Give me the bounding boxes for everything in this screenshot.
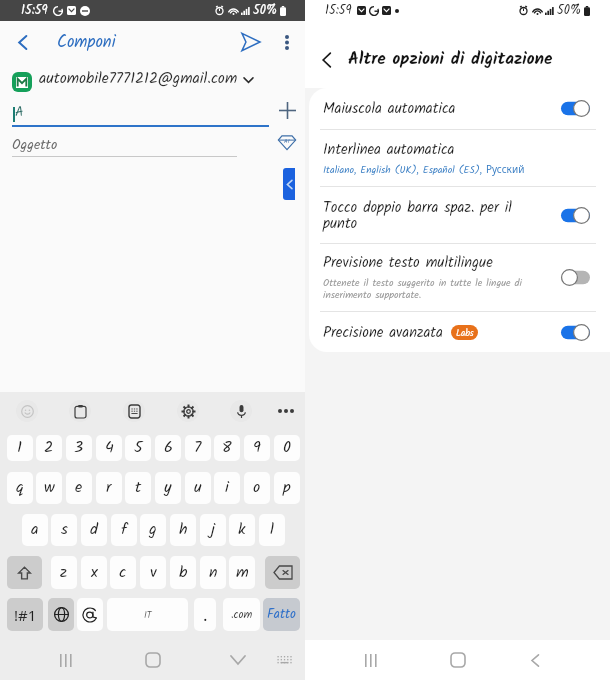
button[interactable]: Add recipient [274, 97, 300, 123]
button[interactable]: Key [194, 598, 216, 631]
staticText: 8 [222, 435, 232, 461]
button[interactable]: x [81, 556, 107, 589]
staticText: Labs [456, 326, 474, 340]
button[interactable]: t [125, 472, 151, 504]
button[interactable]: More [275, 400, 297, 422]
button[interactable]: v [140, 556, 166, 589]
staticText: t [135, 475, 142, 501]
button[interactable]: Emoji [16, 400, 38, 422]
button[interactable]: Toggle [561, 269, 590, 286]
button[interactable]: 4 [96, 435, 122, 461]
button[interactable]: Voice input [230, 400, 252, 422]
button[interactable]: a [22, 514, 48, 546]
button[interactable]: j [200, 514, 226, 546]
button[interactable]: Shift [7, 556, 42, 589]
button[interactable]: Back [305, 35, 348, 85]
button[interactable]: y [155, 472, 181, 504]
button[interactable]: 1 [7, 435, 33, 461]
staticText: 2 [44, 435, 54, 461]
staticText: z [60, 560, 68, 586]
button[interactable]: Key [7, 598, 43, 631]
button[interactable]: l [259, 514, 285, 546]
staticText: 0 [283, 435, 292, 461]
button[interactable]: Tocco doppio barra spaz. per il punto [309, 187, 610, 243]
staticText: Fatto [267, 604, 296, 625]
button[interactable]: Hide keyboard [218, 640, 258, 680]
button[interactable]: Recents [351, 640, 391, 680]
button[interactable]: Toggle [561, 100, 590, 117]
button[interactable]: Stickers [123, 400, 145, 422]
staticText: 9 [253, 435, 261, 461]
button[interactable]: w [36, 472, 62, 504]
staticText: i [225, 475, 229, 501]
button[interactable]: Send [229, 21, 271, 63]
button[interactable]: Back [515, 640, 555, 680]
button[interactable]: Key [107, 598, 188, 631]
button[interactable]: Key [77, 598, 103, 631]
button[interactable]: c [110, 556, 136, 589]
button[interactable]: Open panel [283, 168, 295, 200]
button[interactable]: d [81, 514, 107, 546]
staticText: Altre opzioni di digitazione [348, 46, 553, 73]
staticText: 6 [164, 435, 173, 461]
button[interactable]: More options [271, 21, 303, 63]
button[interactable]: m [229, 556, 255, 589]
button[interactable]: Maiuscola automatica [309, 88, 610, 129]
button[interactable]: Key [263, 598, 300, 631]
staticText: Oggetto [12, 134, 58, 156]
button[interactable]: r [96, 472, 122, 504]
button[interactable]: u [185, 472, 211, 504]
staticText: c [119, 560, 127, 586]
staticText: 7 [194, 435, 202, 461]
staticText: k [238, 517, 246, 543]
button[interactable]: AI assist [274, 129, 300, 155]
staticText: . [203, 603, 208, 626]
staticText: x [91, 560, 98, 586]
button[interactable]: Clipboard [69, 400, 91, 422]
button[interactable]: 3 [66, 435, 92, 461]
button[interactable]: z [51, 556, 77, 589]
button[interactable]: o [244, 472, 270, 504]
button[interactable]: p [274, 472, 300, 504]
button[interactable]: i [214, 472, 240, 504]
button[interactable]: 0 [274, 435, 300, 461]
button[interactable]: Precisione avanzata [309, 312, 610, 352]
button[interactable]: 6 [155, 435, 181, 461]
button[interactable]: Key [48, 598, 74, 631]
button[interactable]: n [200, 556, 226, 589]
button[interactable]: 9 [244, 435, 270, 461]
staticText: g [149, 517, 157, 543]
button[interactable]: g [140, 514, 166, 546]
button[interactable]: Toggle [561, 324, 590, 341]
button[interactable]: Home [133, 640, 173, 680]
button[interactable]: f [111, 514, 137, 546]
button[interactable]: 2 [36, 435, 62, 461]
button[interactable]: 8 [214, 435, 240, 461]
button[interactable]: Backspace [265, 556, 300, 589]
staticText: .com [231, 606, 253, 624]
button[interactable]: Interlinea automatica [309, 130, 610, 186]
button[interactable]: 7 [185, 435, 211, 461]
button[interactable]: b [170, 556, 196, 589]
staticText: AI [284, 137, 290, 147]
button[interactable]: Toggle [561, 207, 590, 224]
staticText: u [194, 475, 202, 501]
staticText: Previsione testo multilingue [323, 251, 493, 274]
button[interactable]: Back [0, 21, 45, 63]
button[interactable]: Previsione testo multilingue [309, 244, 610, 311]
button[interactable]: 5 [125, 435, 151, 461]
button[interactable]: h [170, 514, 196, 546]
button[interactable]: Key [223, 598, 260, 631]
staticText: 50% [253, 1, 278, 21]
staticText: Italiano, English (UK), Español (ES), Ру… [323, 162, 525, 178]
button[interactable]: s [51, 514, 77, 546]
staticText: Ottenete il testo suggerito in tutte le … [323, 275, 522, 304]
button[interactable]: Keyboard switch [267, 643, 301, 677]
button[interactable]: e [66, 472, 92, 504]
button[interactable]: k [229, 514, 255, 546]
button[interactable]: Recents [46, 640, 86, 680]
staticText: m [236, 560, 249, 586]
button[interactable]: Home [438, 640, 478, 680]
button[interactable]: q [7, 472, 33, 504]
button[interactable]: Settings [177, 400, 199, 422]
